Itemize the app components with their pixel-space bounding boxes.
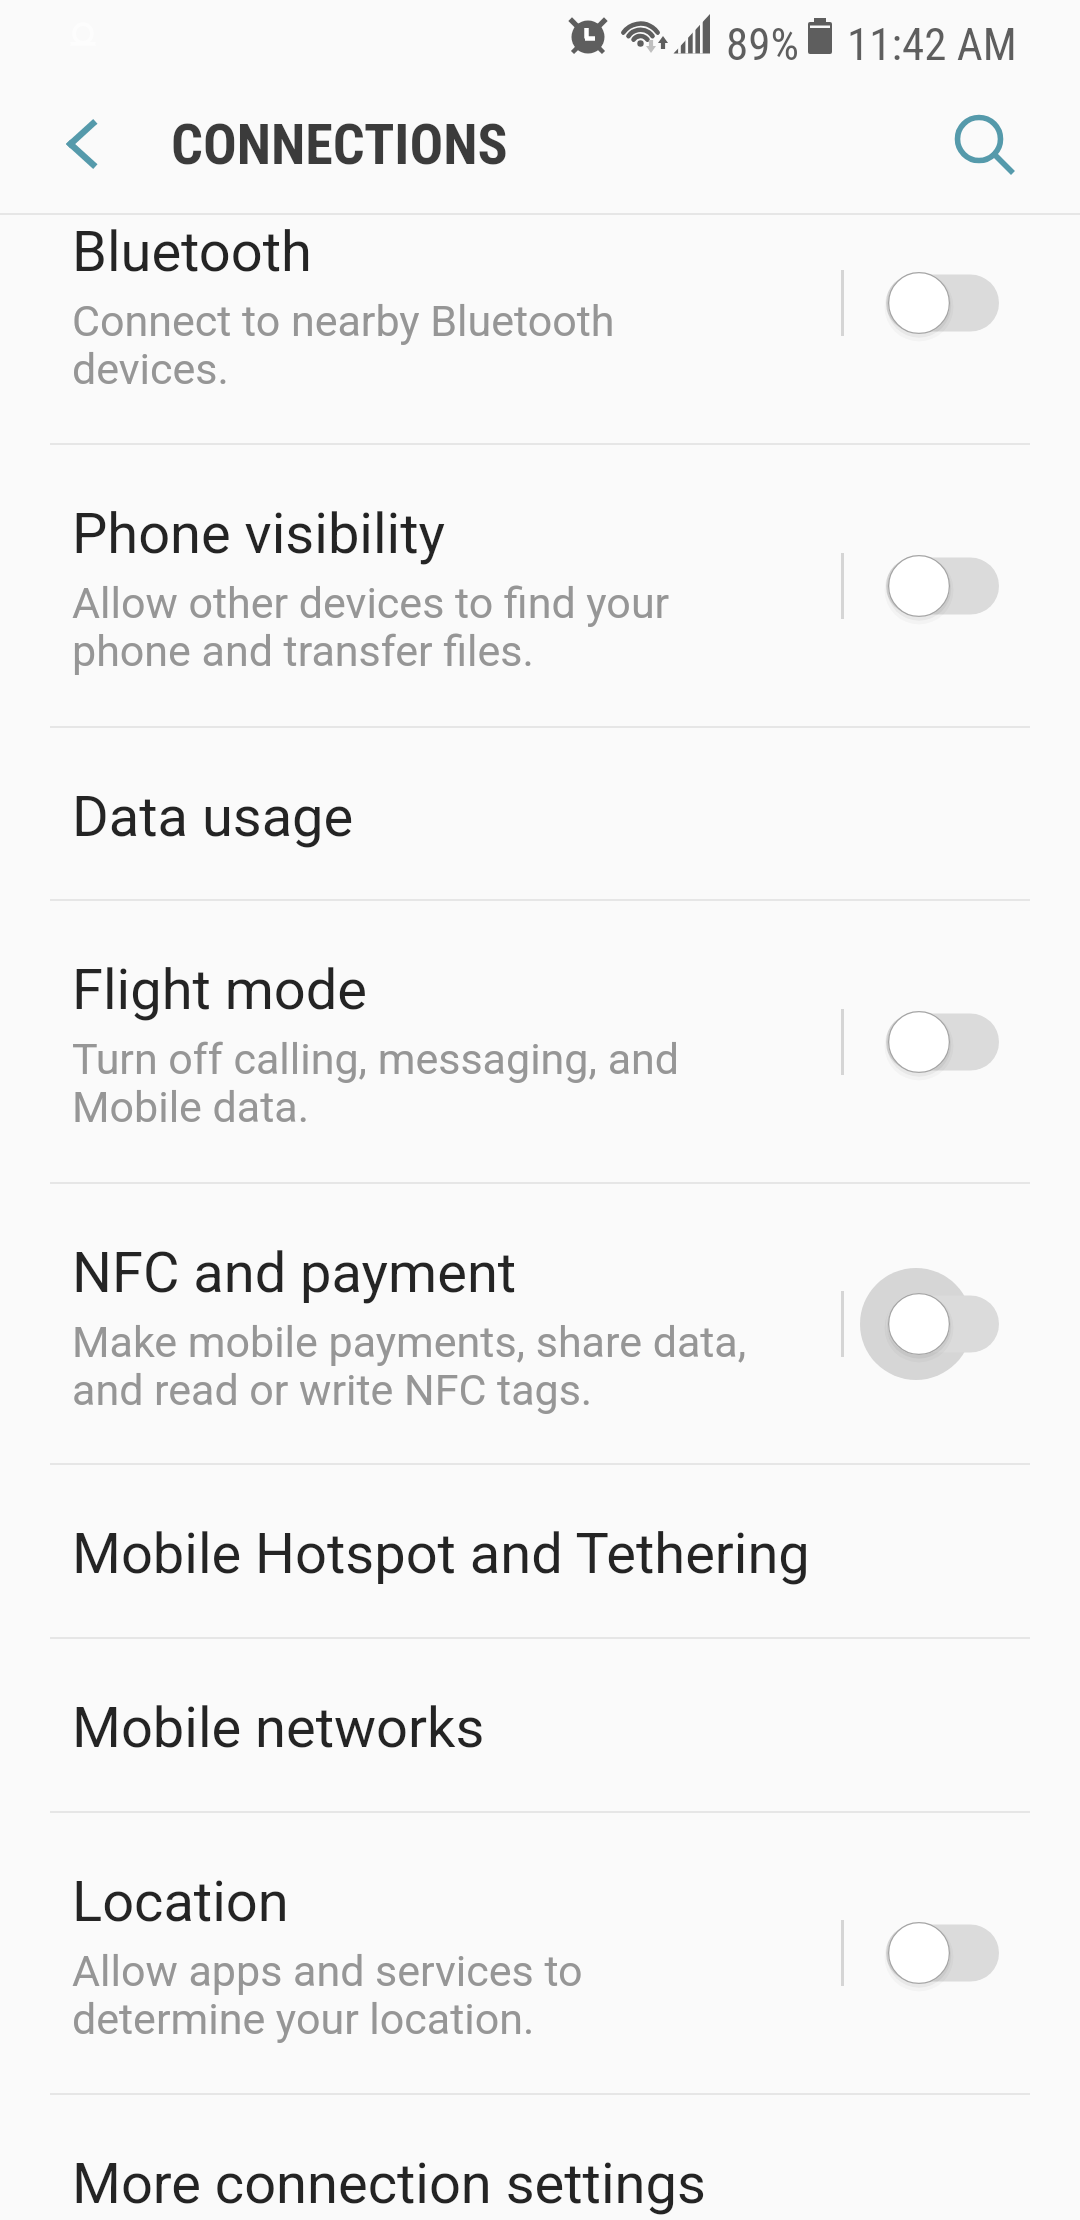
button[interactable]: Location [0, 1812, 1080, 2094]
staticText: Mobile Hotspot and Tethering [72, 1521, 810, 1587]
staticText: Allow apps and services to determine you… [72, 1946, 583, 2044]
staticText: Mobile networks [72, 1695, 485, 1761]
staticText: Make mobile payments, share data, and re… [72, 1317, 747, 1415]
button[interactable]: Bluetooth switch [820, 162, 1060, 444]
staticText: Turn off calling, messaging, and Mobile … [72, 1034, 680, 1132]
button[interactable]: Flight mode switch [820, 900, 1060, 1183]
button[interactable]: Mobile networks [0, 1638, 1080, 1812]
button[interactable]: Location switch [820, 1812, 1060, 2094]
button[interactable]: More connection settings [0, 2094, 1080, 2220]
button[interactable]: Search [925, 85, 1033, 193]
button[interactable]: Back [20, 92, 128, 200]
staticText: Data usage [72, 784, 354, 850]
button[interactable]: Phone visibility switch [820, 444, 1060, 727]
button[interactable]: NFC and payment [0, 1183, 1080, 1464]
staticText: 11:42 AM [847, 18, 1017, 71]
button[interactable]: Bluetooth [0, 162, 1080, 444]
button[interactable]: Data usage [0, 727, 1080, 900]
staticText: Connect to nearby Bluetooth devices. [72, 296, 615, 394]
button[interactable]: Mobile Hotspot and Tethering [0, 1464, 1080, 1638]
staticText: Allow other devices to find your phone a… [72, 578, 670, 676]
staticText: More connection settings [72, 2151, 706, 2217]
staticText: 89% [726, 18, 799, 71]
staticText: Phone visibility [72, 501, 445, 567]
staticText: Location [72, 1869, 289, 1935]
staticText: CONNECTIONS [171, 112, 508, 178]
staticText: Bluetooth [72, 219, 312, 285]
button[interactable]: Flight mode [0, 900, 1080, 1183]
staticText: NFC and payment [72, 1240, 517, 1306]
button[interactable]: NFC and payment switch [820, 1183, 1060, 1464]
button[interactable]: Phone visibility [0, 444, 1080, 727]
staticText: Flight mode [72, 957, 368, 1023]
